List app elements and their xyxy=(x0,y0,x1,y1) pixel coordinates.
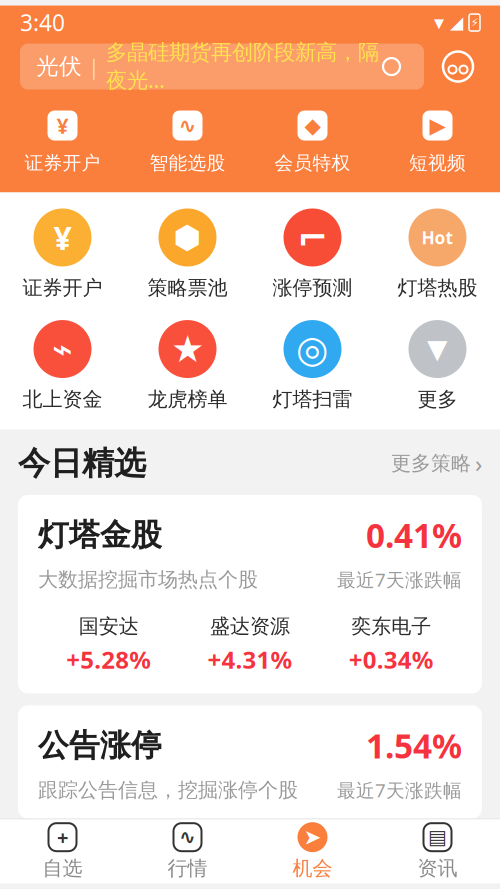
staticText: 灯塔金股 xyxy=(38,516,162,554)
staticText: 今日精选 xyxy=(18,444,146,483)
staticText: 更多 xyxy=(417,387,457,412)
button[interactable]: ▼ xyxy=(375,320,500,412)
button[interactable]: + xyxy=(0,819,125,883)
staticText: 机会 xyxy=(292,856,332,881)
staticText: 更多策略 xyxy=(391,451,471,476)
staticText: 0.41% xyxy=(366,513,462,557)
staticText: +4.31% xyxy=(207,643,292,675)
button[interactable]: ▶ xyxy=(375,107,500,174)
button[interactable]: 光伏 xyxy=(20,43,424,89)
staticText: ⌁ xyxy=(52,329,73,369)
staticText: ∿ xyxy=(179,826,196,848)
staticText: 盛达资源 xyxy=(210,614,290,639)
staticText: | xyxy=(82,52,106,81)
button[interactable]: ∿ xyxy=(125,819,250,883)
staticText: ➤ xyxy=(303,825,321,849)
button[interactable]: ★ xyxy=(125,320,250,412)
staticText: 智能选股 xyxy=(149,151,225,174)
staticText: ◎ xyxy=(296,328,329,370)
button[interactable]: ➤ xyxy=(250,819,375,883)
staticText: ▾ xyxy=(434,11,444,34)
staticText: 灯塔扫雷 xyxy=(272,387,352,412)
staticText: 自选 xyxy=(42,856,82,881)
button[interactable]: 更多策略 xyxy=(391,447,482,479)
button[interactable]: ∿ xyxy=(125,107,250,174)
staticText: + xyxy=(57,824,68,850)
staticText: 最近7天涨跌幅 xyxy=(337,567,462,592)
staticText: 灯塔热股 xyxy=(397,275,477,300)
staticText: 奕东电子 xyxy=(351,614,431,639)
button[interactable]: ◎ xyxy=(250,320,375,412)
staticText: 最近7天涨跌幅 xyxy=(337,778,462,802)
staticText: ∿ xyxy=(178,113,196,138)
staticText: 龙虎榜单 xyxy=(147,387,227,412)
staticText: 光伏 xyxy=(36,53,82,80)
button[interactable]: 公告涨停 xyxy=(18,705,482,818)
staticText: › xyxy=(475,447,482,479)
staticText: 跟踪公告信息，挖掘涨停个股 xyxy=(38,778,298,802)
staticText: 国安达 xyxy=(79,614,139,639)
staticText: 资讯 xyxy=(417,856,457,881)
button[interactable]: 用户中心 xyxy=(436,43,480,89)
staticText: ▶ xyxy=(429,113,445,138)
button[interactable]: ¥ xyxy=(0,107,125,174)
staticText: 证券开户 xyxy=(22,275,102,300)
button[interactable]: ¥ xyxy=(0,208,125,300)
button[interactable]: ⌁ xyxy=(0,320,125,412)
staticText: ⌐ xyxy=(297,216,328,259)
button[interactable]: ⌐ xyxy=(250,208,375,300)
button[interactable]: 灯塔金股 xyxy=(18,495,482,693)
staticText: ◢ xyxy=(450,13,463,32)
staticText: 涨停预测 xyxy=(272,275,352,300)
staticText: +5.28% xyxy=(66,643,151,675)
staticText: ◆ xyxy=(304,113,320,138)
staticText: ⚡︎ xyxy=(470,16,478,29)
staticText: +0.34% xyxy=(349,643,434,675)
staticText: 1.54% xyxy=(366,723,462,768)
staticText: 公告涨停 xyxy=(38,727,162,764)
staticText: ▼ xyxy=(427,334,448,364)
staticText: 多晶硅期货再创阶段新高，隔夜光… xyxy=(106,39,379,94)
staticText: ⬢ xyxy=(173,219,201,256)
staticText: ¥ xyxy=(53,216,71,259)
staticText: 行情 xyxy=(167,856,207,881)
staticText: ▤ xyxy=(428,826,447,848)
button[interactable]: ◆ xyxy=(250,107,375,174)
button[interactable]: ⬢ xyxy=(125,208,250,300)
staticText: 北上资金 xyxy=(22,387,102,412)
button[interactable]: Hot xyxy=(375,208,500,300)
staticText: 3:40 xyxy=(20,7,65,38)
staticText: Hot xyxy=(421,226,453,249)
staticText: 策略票池 xyxy=(147,275,227,300)
staticText: ★ xyxy=(171,328,204,370)
staticText: 大数据挖掘市场热点个股 xyxy=(38,567,258,592)
staticText: 证券开户 xyxy=(24,151,100,174)
staticText: ¥ xyxy=(56,111,68,140)
button[interactable]: ▤ xyxy=(375,819,500,883)
staticText: 会员特权 xyxy=(274,151,350,174)
staticText: 短视频 xyxy=(409,151,466,174)
